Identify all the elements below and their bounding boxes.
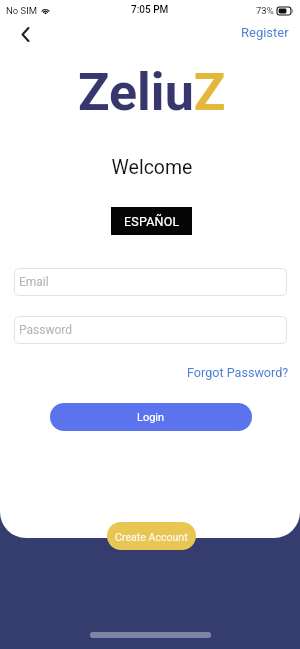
button[interactable]: Register: [230, 21, 300, 44]
staticText: ESPAÑOL: [124, 214, 180, 229]
staticText: Password: [19, 323, 73, 337]
button[interactable]: Forgot Password?: [179, 363, 300, 382]
staticText: ZeliuZ: [78, 62, 226, 123]
button[interactable]: Back: [13, 22, 37, 46]
staticText: Welcome: [2, 156, 300, 179]
button[interactable]: Password: [14, 316, 287, 344]
button[interactable]: ESPAÑOL: [111, 207, 192, 235]
staticText: 7:05 PM: [131, 4, 169, 16]
button[interactable]: Create Account: [107, 522, 196, 550]
staticText: No SIM: [6, 5, 38, 16]
staticText: 73%: [256, 5, 274, 16]
button[interactable]: Email: [14, 268, 287, 296]
staticText: Forgot Password?: [187, 365, 289, 380]
staticText: Register: [241, 25, 289, 40]
staticText: Create Account: [115, 531, 188, 543]
button[interactable]: Login: [50, 403, 252, 431]
staticText: Login: [137, 411, 165, 424]
staticText: Email: [19, 275, 49, 289]
